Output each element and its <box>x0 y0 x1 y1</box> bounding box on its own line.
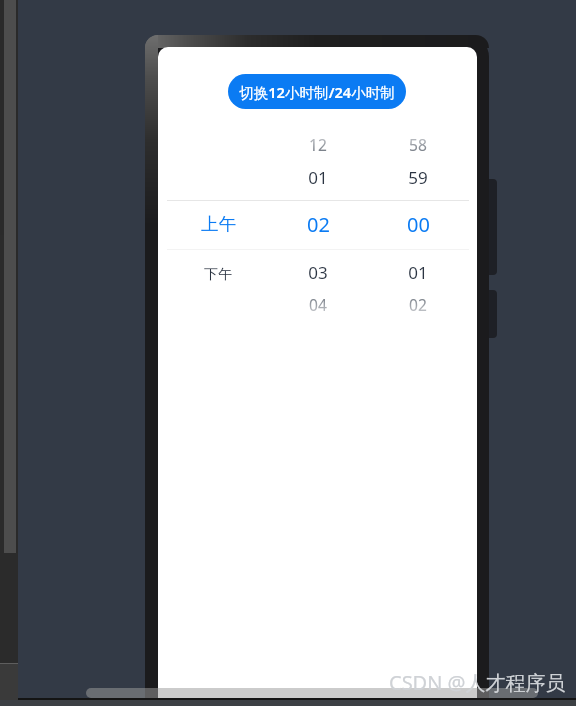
staticText: 02 <box>409 294 427 315</box>
button[interactable]: 02 <box>370 286 466 322</box>
button[interactable]: 12 <box>270 126 366 162</box>
staticText: 01 <box>408 261 428 284</box>
staticText: 58 <box>409 134 427 155</box>
staticText: 03 <box>308 261 328 284</box>
staticText: CSDN @人才程序员 <box>389 669 566 696</box>
button[interactable]: 切换12小时制/24小时制 <box>228 74 406 109</box>
button[interactable]: 04 <box>270 286 366 322</box>
staticText: 下午 <box>204 266 232 284</box>
button[interactable]: 下午 <box>170 257 266 293</box>
staticText: 59 <box>408 166 428 189</box>
staticText: 02 <box>307 211 330 238</box>
button[interactable]: 02 <box>270 206 366 242</box>
button[interactable]: 58 <box>370 126 466 162</box>
button[interactable]: 01 <box>370 254 466 290</box>
button[interactable]: 03 <box>270 254 366 290</box>
staticText: 上午 <box>201 213 236 235</box>
button[interactable]: 上午 <box>170 206 266 242</box>
button[interactable]: 00 <box>370 206 466 242</box>
staticText: 01 <box>308 166 328 189</box>
staticText: 00 <box>407 211 430 238</box>
button[interactable]: 01 <box>270 159 366 195</box>
staticText: 12 <box>309 134 327 155</box>
staticText: 04 <box>309 294 327 315</box>
staticText: 切换12小时制/24小时制 <box>239 82 395 102</box>
button[interactable]: 59 <box>370 159 466 195</box>
